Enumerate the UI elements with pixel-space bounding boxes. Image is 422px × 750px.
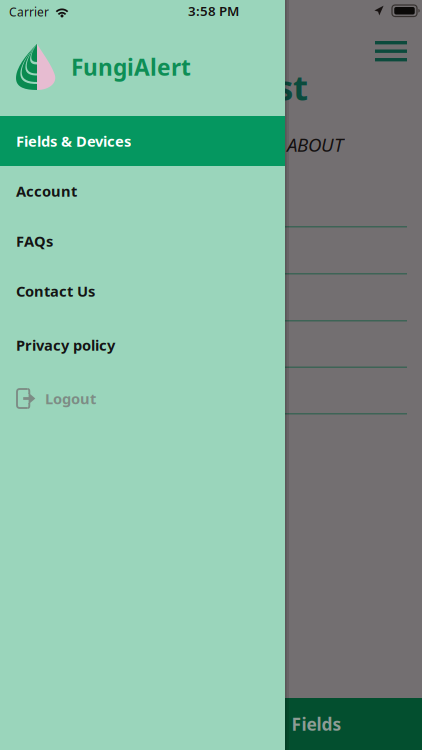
staticText: Contact Us [16,281,95,301]
staticText: 3:58 PM [188,2,239,20]
staticText: TAP ON A FIELD TO LEARN MORE ABOUT [16,132,343,157]
staticText: FAQs [16,231,53,251]
button[interactable]: Logout [0,377,285,420]
button[interactable]: Contact Us [0,266,285,316]
staticText: Account [16,181,77,201]
staticText: Fields Device List [16,64,308,110]
staticText: Privacy policy [16,335,115,355]
staticText: Carrier [9,4,49,20]
button[interactable]: Privacy policy [0,320,285,370]
button[interactable]: Open menu [366,32,416,70]
button[interactable]: Fields [211,698,422,750]
staticText: FungiAlert [71,52,191,82]
button[interactable]: FAQs [0,216,285,266]
staticText: Fields & Devices [16,131,131,151]
staticText: Logout [45,389,96,408]
staticText: Fields [291,712,341,735]
button[interactable]: Account [0,166,285,216]
button[interactable]: Fields & Devices [0,116,285,166]
